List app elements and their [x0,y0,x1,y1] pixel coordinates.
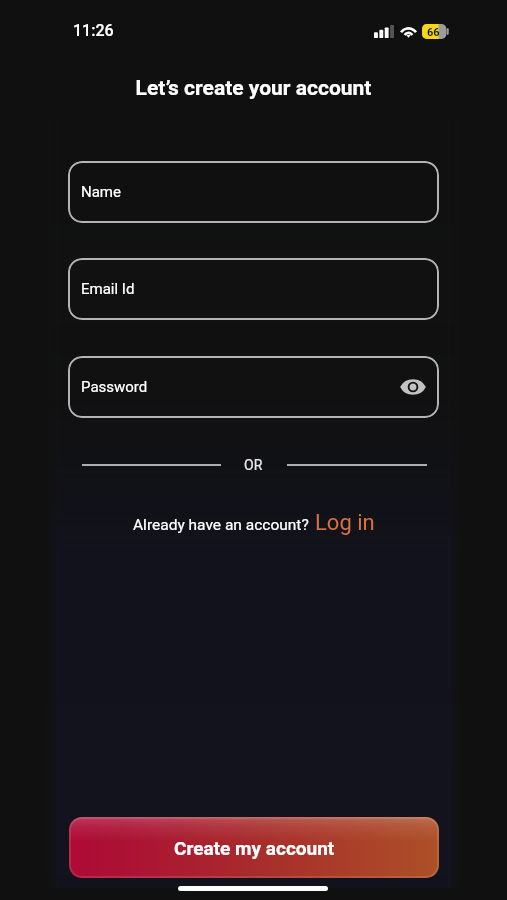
button[interactable]: Email Id [68,258,439,320]
other: Wi-Fi [399,23,418,38]
button[interactable]: Show password [397,374,429,400]
staticText: 66 [427,26,440,39]
staticText: Password [81,378,148,396]
button[interactable]: Name [68,161,439,223]
staticText: OR [244,457,263,473]
staticText: Already have an account? [133,516,309,534]
staticText: Name [81,183,121,201]
other: Cellular signal [374,25,394,38]
staticText: Log in [315,510,375,536]
staticText: Email Id [81,280,135,298]
button[interactable]: Password [68,356,439,418]
staticText: Let’s create your account [0,76,507,101]
staticText: Create my account [174,837,335,859]
button[interactable]: Create my account [69,817,439,878]
staticText: 11:26 [73,21,114,40]
button[interactable]: Log in [315,510,375,536]
